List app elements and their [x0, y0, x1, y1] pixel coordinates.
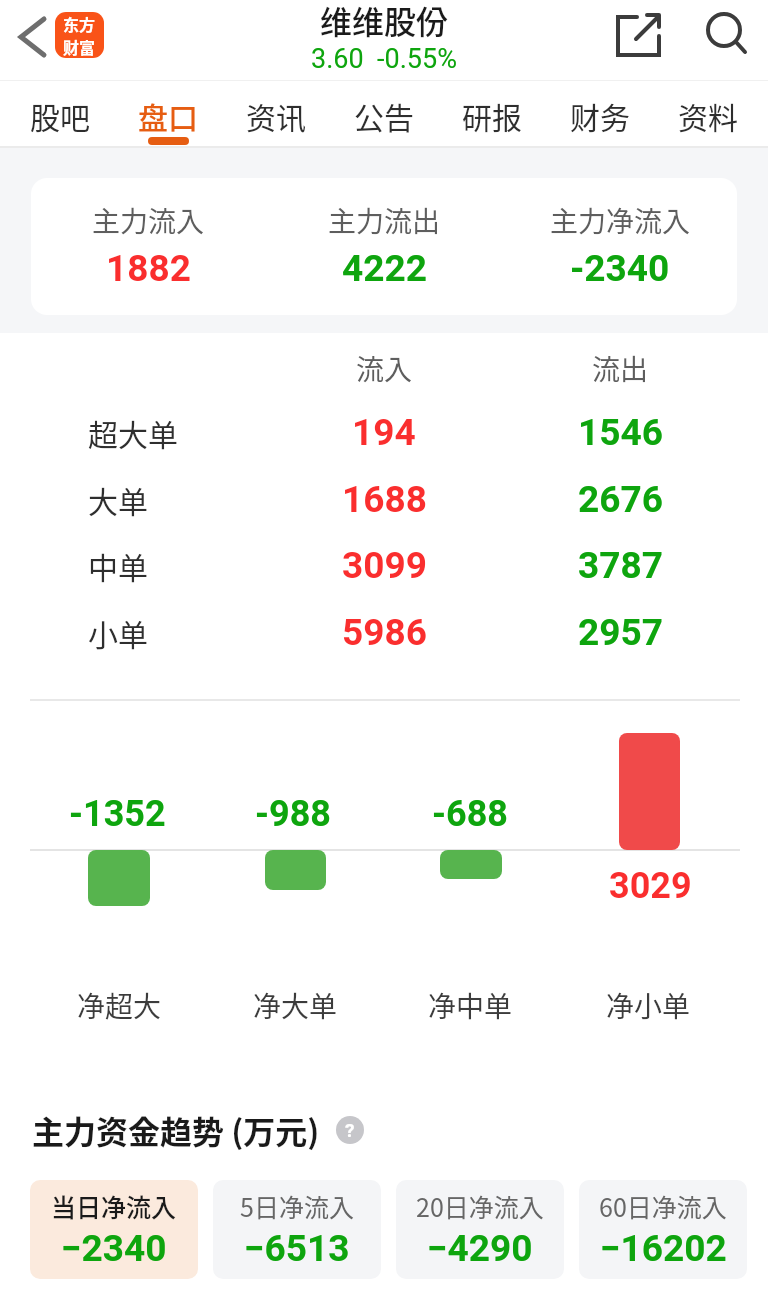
staticText: 财务 [570, 94, 630, 137]
staticText: 财富 [63, 35, 96, 58]
staticText: 当日净流入 [51, 1188, 177, 1224]
staticText: 盘口 [138, 94, 198, 137]
staticText: 2676 [578, 478, 663, 521]
staticText: 超大单 [88, 411, 178, 454]
button[interactable] [10, 10, 58, 62]
button[interactable]: 财务 [555, 84, 645, 146]
button[interactable] [30, 1180, 198, 1279]
staticText: −16202 [600, 1227, 727, 1270]
button[interactable]: 资讯 [231, 84, 321, 146]
staticText: ? [345, 1119, 355, 1141]
staticText: -1352 [69, 793, 166, 835]
staticText: 主力资金趋势 (万元) [32, 1107, 320, 1153]
staticText: 5日净流入 [240, 1188, 354, 1224]
staticText: 主力流入 [92, 200, 205, 241]
button[interactable] [579, 1180, 747, 1279]
staticText: 中单 [88, 544, 148, 587]
button[interactable] [698, 8, 754, 62]
staticText: 1546 [578, 411, 663, 454]
button[interactable] [213, 1180, 381, 1279]
staticText: 净中单 [428, 985, 513, 1026]
staticText: 资讯 [246, 94, 306, 137]
staticText: 公告 [354, 94, 414, 137]
staticText: 主力净流入 [550, 200, 691, 241]
staticText: 股吧 [30, 94, 90, 137]
staticText: 流入 [356, 348, 413, 389]
staticText: 60日净流入 [599, 1188, 727, 1224]
button[interactable]: 公告 [339, 84, 429, 146]
staticText: −4290 [427, 1227, 533, 1270]
staticText: 净大单 [253, 985, 338, 1026]
staticText: 20日净流入 [416, 1188, 544, 1224]
staticText: 2957 [578, 611, 663, 654]
button[interactable] [396, 1180, 564, 1279]
staticText: 研报 [462, 94, 522, 137]
staticText: 主力流出 [328, 200, 441, 241]
staticText: -688 [432, 793, 508, 835]
button[interactable] [610, 8, 664, 62]
staticText: −2340 [61, 1227, 167, 1270]
staticText: 流出 [592, 348, 649, 389]
staticText: 资料 [678, 94, 738, 137]
button[interactable]: 股吧 [15, 84, 105, 146]
button[interactable]: 东方 [55, 12, 104, 58]
staticText: −6513 [244, 1227, 350, 1270]
staticText: 3787 [578, 544, 663, 587]
staticText: 1882 [106, 247, 191, 290]
button[interactable]: 研报 [447, 84, 537, 146]
staticText: 1688 [342, 478, 427, 521]
staticText: 小单 [88, 611, 148, 654]
staticText: 大单 [88, 478, 148, 521]
staticText: 维维股份 [320, 0, 449, 43]
staticText: 5986 [342, 611, 427, 654]
button[interactable]: 盘口 [123, 84, 213, 146]
staticText: 净超大 [77, 985, 162, 1026]
staticText: 3.60 -0.55% [311, 43, 457, 75]
staticText: 4222 [342, 247, 427, 290]
staticText: 194 [352, 411, 416, 454]
staticText: 东方 [63, 12, 96, 35]
staticText: 3099 [342, 544, 427, 587]
staticText: 3029 [609, 865, 692, 907]
button[interactable]: 资料 [663, 84, 753, 146]
staticText: -988 [255, 793, 331, 835]
staticText: 净小单 [606, 985, 691, 1026]
staticText: -2340 [570, 247, 670, 290]
